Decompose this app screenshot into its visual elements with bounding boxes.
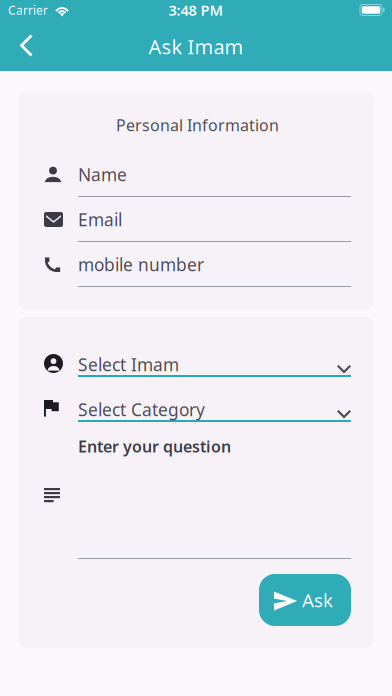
staticText: Ask Imam bbox=[148, 33, 243, 60]
staticText: mobile number bbox=[78, 253, 204, 276]
staticText: Carrier bbox=[8, 2, 48, 18]
staticText: 3:48 PM bbox=[168, 0, 223, 20]
button[interactable]: Back bbox=[0, 20, 52, 71]
staticText: Ask bbox=[302, 588, 333, 612]
staticText: Name bbox=[78, 163, 127, 186]
button[interactable]: Ask bbox=[259, 574, 351, 626]
staticText: Personal Information bbox=[116, 114, 279, 136]
staticText: Email bbox=[78, 208, 122, 231]
staticText: Select Category bbox=[78, 398, 205, 421]
staticText: Select Imam bbox=[78, 353, 179, 376]
staticText: Enter your question bbox=[78, 436, 231, 457]
